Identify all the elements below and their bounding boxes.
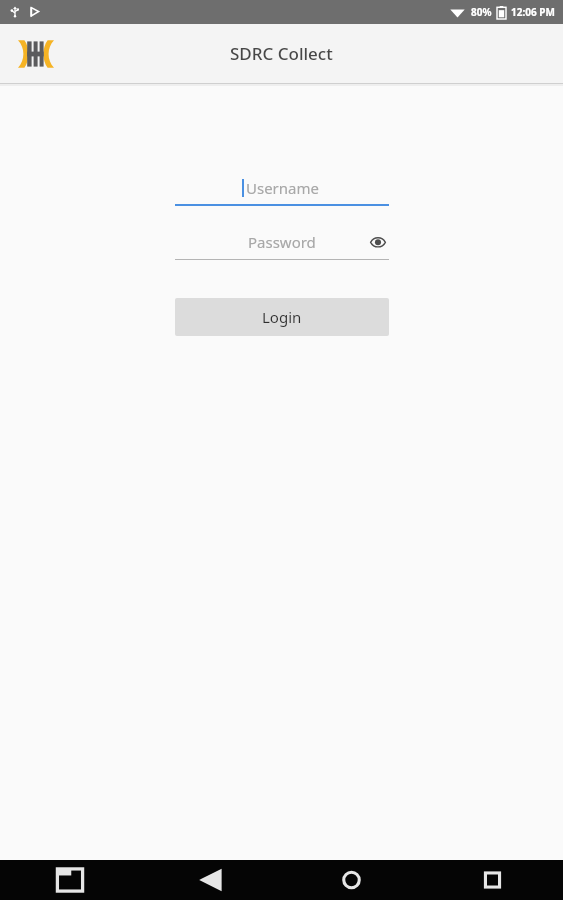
button[interactable]: Password xyxy=(175,228,389,260)
button[interactable]: Back xyxy=(140,860,281,900)
button[interactable]: Screenshot xyxy=(0,860,140,900)
staticText: Username xyxy=(246,178,319,198)
button[interactable]: Recents xyxy=(422,860,563,900)
button[interactable]: Login xyxy=(175,298,389,336)
staticText: 80% xyxy=(471,5,492,19)
staticText: 12:06 PM xyxy=(511,5,555,19)
staticText: SDRC Collect xyxy=(230,42,333,65)
button[interactable]: Username xyxy=(175,174,389,206)
button[interactable]: SDRC logo xyxy=(16,39,56,69)
staticText: Login xyxy=(262,307,302,327)
button[interactable]: Show password xyxy=(367,231,389,253)
button[interactable]: Home xyxy=(281,860,422,900)
staticText: Password xyxy=(248,232,316,252)
